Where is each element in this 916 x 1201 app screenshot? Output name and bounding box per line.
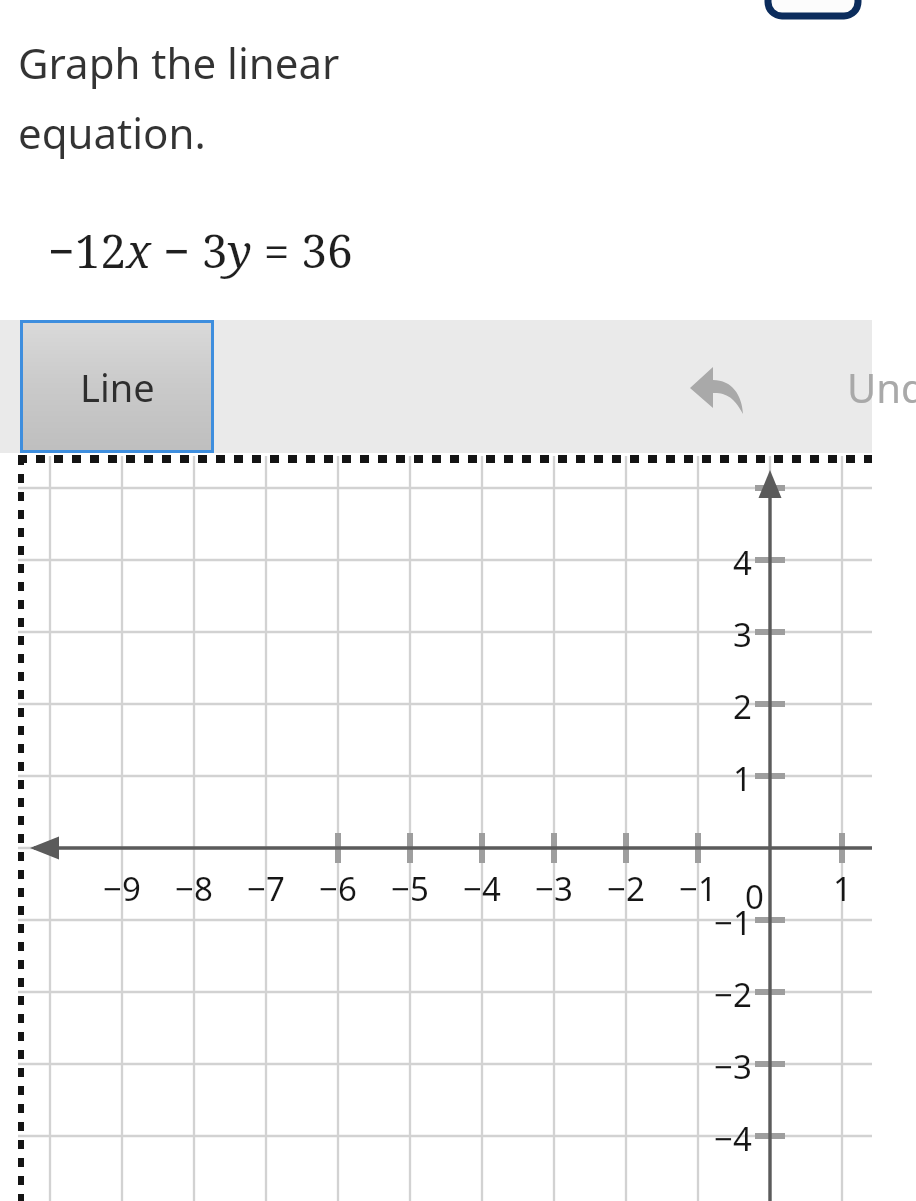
staticText: −4 [714, 1116, 752, 1161]
staticText: 3 [733, 612, 752, 657]
staticText: −2 [607, 866, 645, 911]
staticText: 2 [733, 684, 752, 729]
staticText: −5 [391, 866, 429, 911]
staticText: −4 [463, 866, 501, 911]
staticText: Line [80, 361, 155, 413]
staticText: Undo [847, 360, 916, 414]
staticText: −9 [103, 866, 141, 911]
staticText: 1 [733, 756, 752, 801]
staticText: 4 [733, 540, 752, 585]
staticText: −12x − 3y = 36 [48, 219, 353, 282]
staticText: 1 [833, 866, 852, 911]
staticText: −6 [319, 866, 357, 911]
button[interactable]: Undo [686, 320, 872, 453]
staticText: −3 [714, 1044, 752, 1089]
staticText: 0 [745, 874, 764, 919]
button[interactable]: Open menu [768, 0, 858, 16]
staticText: Graph the linear equation. [18, 34, 340, 161]
staticText: −1 [714, 900, 752, 945]
staticText: −7 [247, 866, 285, 911]
staticText: −2 [714, 972, 752, 1017]
staticText: −3 [535, 866, 573, 911]
staticText: −1 [679, 866, 717, 911]
staticText: −8 [175, 866, 213, 911]
button[interactable]: Line [20, 320, 214, 453]
